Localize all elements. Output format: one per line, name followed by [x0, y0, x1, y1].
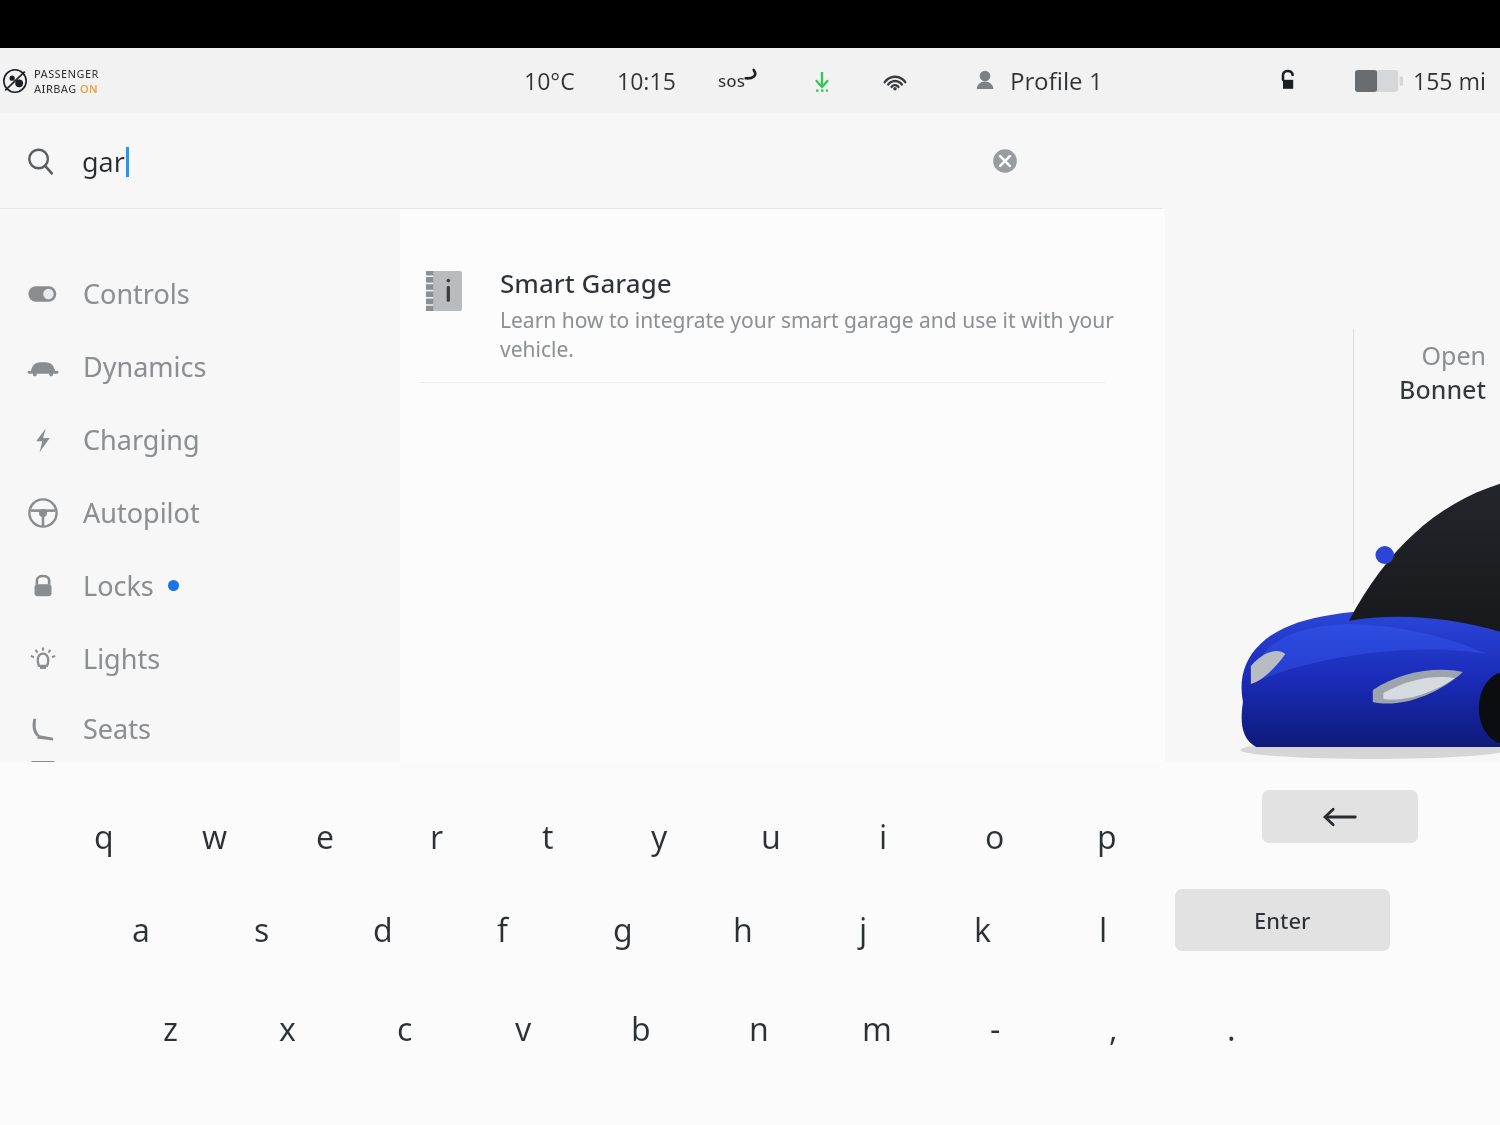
staticText: Open: [1421, 338, 1486, 372]
button[interactable]: f: [443, 895, 563, 965]
staticText: y: [651, 815, 668, 859]
button[interactable]: -: [936, 994, 1054, 1064]
staticText: sos: [718, 69, 745, 92]
button[interactable]: Wi-Fi: [879, 65, 911, 97]
staticText: u: [761, 815, 781, 859]
button[interactable]: sos: [716, 67, 761, 94]
staticText: AIRBAG: [34, 81, 80, 96]
button[interactable]: h: [683, 895, 803, 965]
button[interactable]: o: [939, 802, 1051, 872]
staticText: g: [613, 908, 633, 952]
button[interactable]: r: [381, 802, 492, 872]
staticText: p: [1097, 815, 1117, 859]
button[interactable]: b: [582, 994, 700, 1064]
staticText: m: [862, 1007, 892, 1051]
button[interactable]: d: [322, 895, 443, 965]
button[interactable]: p: [1051, 802, 1163, 872]
button[interactable]: w: [159, 802, 270, 872]
staticText: Controls: [83, 275, 190, 312]
button[interactable]: Open: [1399, 338, 1486, 406]
staticText: r: [430, 815, 444, 859]
button[interactable]: ,: [1054, 994, 1172, 1064]
button[interactable]: Autopilot: [0, 476, 400, 549]
button[interactable]: c: [346, 994, 464, 1064]
staticText: w: [202, 815, 228, 859]
button[interactable]: k: [923, 895, 1043, 965]
staticText: .: [1227, 1007, 1236, 1051]
staticText: l: [1099, 908, 1108, 952]
button[interactable]: m: [818, 994, 936, 1064]
button[interactable]: u: [715, 802, 827, 872]
staticText: Charging: [83, 421, 200, 458]
button[interactable]: n: [700, 994, 818, 1064]
staticText: d: [373, 908, 393, 952]
button[interactable]: Dynamics: [0, 330, 400, 403]
staticText: c: [397, 1007, 413, 1051]
staticText: j: [859, 908, 868, 952]
staticText: -: [990, 1007, 1001, 1051]
staticText: a: [132, 908, 150, 952]
staticText: v: [515, 1007, 532, 1051]
staticText: o: [985, 815, 1005, 859]
button[interactable]: e: [270, 802, 381, 872]
staticText: 10:15: [617, 65, 676, 96]
button[interactable]: Lights: [0, 622, 400, 695]
staticText: Profile 1: [1010, 64, 1103, 97]
button[interactable]: Software update download: [807, 66, 837, 96]
staticText: Smart Garage: [500, 265, 672, 300]
staticText: z: [163, 1007, 179, 1051]
button[interactable]: v: [464, 994, 582, 1064]
button[interactable]: .: [1172, 994, 1290, 1064]
button[interactable]: Backspace: [1262, 790, 1418, 843]
staticText: Lights: [83, 640, 161, 677]
staticText: ,: [1109, 1007, 1118, 1051]
button[interactable]: i: [827, 802, 939, 872]
staticText: q: [94, 815, 114, 859]
button[interactable]: x: [229, 994, 346, 1064]
staticText: Autopilot: [83, 494, 200, 531]
button[interactable]: l: [1043, 895, 1163, 965]
staticText: b: [631, 1007, 651, 1051]
staticText: Locks: [83, 567, 154, 604]
staticText: k: [974, 908, 992, 952]
staticText: Dynamics: [83, 348, 207, 385]
button[interactable]: Clear search: [989, 145, 1021, 177]
button[interactable]: Enter: [1175, 889, 1390, 951]
button[interactable]: j: [803, 895, 923, 965]
button[interactable]: Profile 1: [969, 64, 1105, 97]
staticText: e: [316, 815, 335, 859]
button[interactable]: y: [603, 802, 715, 872]
staticText: Enter: [1254, 905, 1311, 935]
button[interactable]: s: [201, 895, 322, 965]
button[interactable]: g: [563, 895, 683, 965]
staticText: ON: [80, 81, 98, 96]
staticText: PASSENGER: [34, 66, 99, 81]
staticText: x: [279, 1007, 296, 1051]
staticText: gar: [82, 143, 125, 180]
staticText: f: [497, 908, 509, 952]
button[interactable]: Seats: [0, 695, 400, 762]
button[interactable]: Vehicle unlocked: [1274, 66, 1304, 96]
button[interactable]: z: [112, 994, 229, 1064]
staticText: Learn how to integrate your smart garage…: [500, 306, 1125, 364]
button[interactable]: t: [492, 802, 603, 872]
staticText: h: [733, 908, 753, 952]
staticText: t: [542, 815, 554, 859]
staticText: Bonnet: [1399, 372, 1486, 406]
button[interactable]: a: [80, 895, 201, 965]
button[interactable]: Controls: [0, 257, 400, 330]
staticText: 155 mi: [1413, 65, 1486, 96]
staticText: Seats: [83, 710, 151, 747]
button[interactable]: Locks: [0, 549, 400, 622]
button[interactable]: Charging: [0, 403, 400, 476]
staticText: i: [879, 815, 888, 859]
staticText: n: [749, 1007, 769, 1051]
button[interactable]: Smart Garage: [400, 257, 1165, 382]
staticText: 10°C: [524, 65, 575, 96]
button[interactable]: q: [48, 802, 159, 872]
staticText: s: [254, 908, 270, 952]
